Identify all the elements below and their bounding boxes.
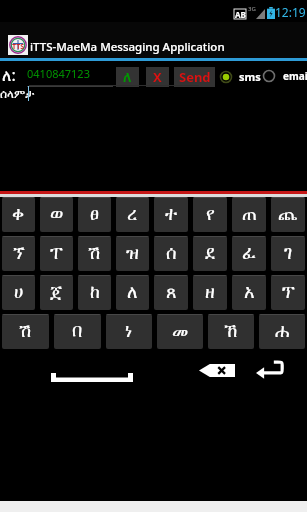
staticText: ጨ	[278, 206, 298, 224]
button[interactable]: Send	[174, 67, 215, 87]
staticText: AB	[235, 9, 246, 19]
button[interactable]: ለ	[116, 275, 149, 310]
button[interactable]: X	[146, 67, 169, 87]
staticText: ለ:	[2, 64, 16, 86]
button[interactable]: ከ	[78, 275, 111, 310]
button[interactable]: ረ	[116, 197, 149, 232]
staticText: ከ	[90, 284, 100, 302]
button[interactable]: ሀ	[2, 275, 35, 310]
staticText: ኘ	[13, 245, 25, 263]
staticText: ዘ	[205, 284, 215, 302]
button[interactable]: ወ	[40, 197, 73, 232]
button[interactable]: ጨ	[271, 197, 305, 232]
button[interactable]: ፕ	[271, 275, 305, 310]
button[interactable]: Backspace	[199, 364, 235, 377]
button[interactable]: Enter	[256, 361, 283, 380]
staticText: በ	[72, 323, 83, 341]
staticText: ለ	[123, 68, 132, 86]
button[interactable]: ገ	[271, 236, 305, 271]
button[interactable]: ኘ	[2, 236, 35, 271]
button[interactable]: ጸ	[154, 275, 188, 310]
staticText: ፐ	[50, 245, 63, 263]
button[interactable]: ጠ	[232, 197, 266, 232]
button[interactable]: ጀ	[40, 275, 73, 310]
staticText: ነ	[125, 323, 133, 341]
staticText: ሽ	[88, 245, 101, 263]
button[interactable]: ሰ	[154, 236, 188, 271]
staticText: ቀ	[12, 206, 25, 224]
staticText: የ	[206, 206, 215, 224]
button[interactable]: Space	[51, 373, 133, 382]
staticText: ጀ	[50, 284, 63, 302]
button[interactable]: email	[263, 69, 307, 83]
button[interactable]: sms	[220, 69, 261, 84]
staticText: መ	[172, 323, 189, 341]
staticText: ተ	[165, 206, 178, 224]
staticText: ሽ	[19, 323, 32, 341]
button[interactable]: ለ	[116, 67, 139, 87]
staticText: ወ	[50, 206, 64, 224]
staticText: ጸ	[166, 284, 177, 302]
button[interactable]: የ	[193, 197, 227, 232]
staticText: TTS	[12, 42, 25, 52]
staticText: ፈ	[242, 245, 256, 263]
button[interactable]: ሽ	[78, 236, 111, 271]
staticText: email	[283, 69, 307, 83]
staticText: Send	[179, 68, 211, 86]
staticText: 3G	[248, 5, 256, 13]
button[interactable]: ሽ	[2, 314, 49, 349]
staticText: አ	[244, 284, 255, 302]
staticText: ፕ	[282, 284, 295, 302]
staticText: X	[153, 68, 162, 86]
staticText: sms	[239, 69, 261, 84]
staticText: ሰ	[166, 245, 177, 263]
button[interactable]: ተ	[154, 197, 188, 232]
staticText: ዝ	[126, 245, 139, 263]
staticText: ገ	[284, 245, 293, 263]
button[interactable]: ደ	[193, 236, 227, 271]
staticText: ደ	[205, 245, 215, 263]
button[interactable]: ሐ	[259, 314, 305, 349]
button[interactable]: መ	[157, 314, 203, 349]
button[interactable]: ነ	[106, 314, 152, 349]
staticText: ሐ	[275, 323, 290, 341]
button[interactable]: ፐ	[40, 236, 73, 271]
staticText: ኸ	[224, 323, 238, 341]
button[interactable]: ፀ	[78, 197, 111, 232]
staticText: ረ	[127, 206, 138, 224]
staticText: ጠ	[242, 206, 257, 224]
button[interactable]: ኸ	[208, 314, 254, 349]
staticText: 12:19	[275, 4, 306, 20]
staticText: ሰላምታ	[0, 88, 35, 100]
staticText: 0410847123	[27, 66, 90, 81]
button[interactable]: ፈ	[232, 236, 266, 271]
staticText: ለ	[127, 284, 138, 302]
button[interactable]: ቀ	[2, 197, 35, 232]
button[interactable]: አ	[232, 275, 266, 310]
staticText: iTTS-MaeMa Messaging Application	[30, 39, 225, 55]
button[interactable]: ዘ	[193, 275, 227, 310]
staticText: ፀ	[90, 206, 99, 224]
button[interactable]: በ	[54, 314, 101, 349]
button[interactable]: ዝ	[116, 236, 149, 271]
staticText: ሀ	[14, 284, 24, 302]
